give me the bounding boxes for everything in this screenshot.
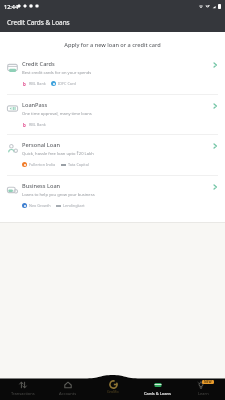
staticText: Learn [198, 391, 209, 396]
staticText: b [23, 81, 26, 86]
staticText: Credit Cards [22, 60, 55, 68]
staticText: Best credit cards for on your spends [22, 70, 92, 76]
staticText: Loans to help you grow your business [22, 192, 95, 198]
staticText: Transactions [11, 391, 35, 396]
staticText: LoanPass [22, 101, 48, 109]
staticText: Tata Capital [68, 162, 89, 167]
staticText: RBL Bank [29, 122, 46, 127]
button[interactable]: Credit Cards [0, 54, 225, 94]
staticText: Cards & Loans [144, 391, 171, 396]
button[interactable]: Personal Loan [0, 135, 225, 175]
button[interactable]: Transactions [0, 375, 45, 400]
staticText: RBL Bank [29, 81, 46, 86]
staticText: NEW [204, 380, 212, 384]
staticText: One time approval, many time loans [22, 111, 92, 117]
staticText: b [23, 122, 26, 127]
staticText: IDFC Card [58, 81, 76, 86]
staticText: Fullerton India [29, 162, 56, 167]
staticText: Quick, hassle free loan upto ₹20 Lakh [22, 151, 94, 157]
button[interactable]: Cards & Loans [135, 375, 180, 400]
button[interactable]: Business Loan [0, 176, 225, 216]
staticText: Apply for a new loan or a credit card [0, 41, 225, 49]
staticText: Neo Growth [29, 203, 51, 208]
staticText: 12:44 [4, 3, 19, 10]
button[interactable]: LoanPass [0, 95, 225, 134]
staticText: Lendingkart [63, 203, 85, 208]
button[interactable]: Accounts [45, 375, 90, 400]
staticText: GroMo [107, 389, 119, 394]
staticText: Accounts [59, 391, 77, 396]
button[interactable]: GroMo [90, 375, 135, 400]
staticText: Credit Cards & Loans [7, 18, 70, 27]
staticText: Personal Loan [22, 141, 60, 149]
button[interactable]: NEW [180, 375, 225, 400]
staticText: Business Loan [22, 182, 61, 190]
